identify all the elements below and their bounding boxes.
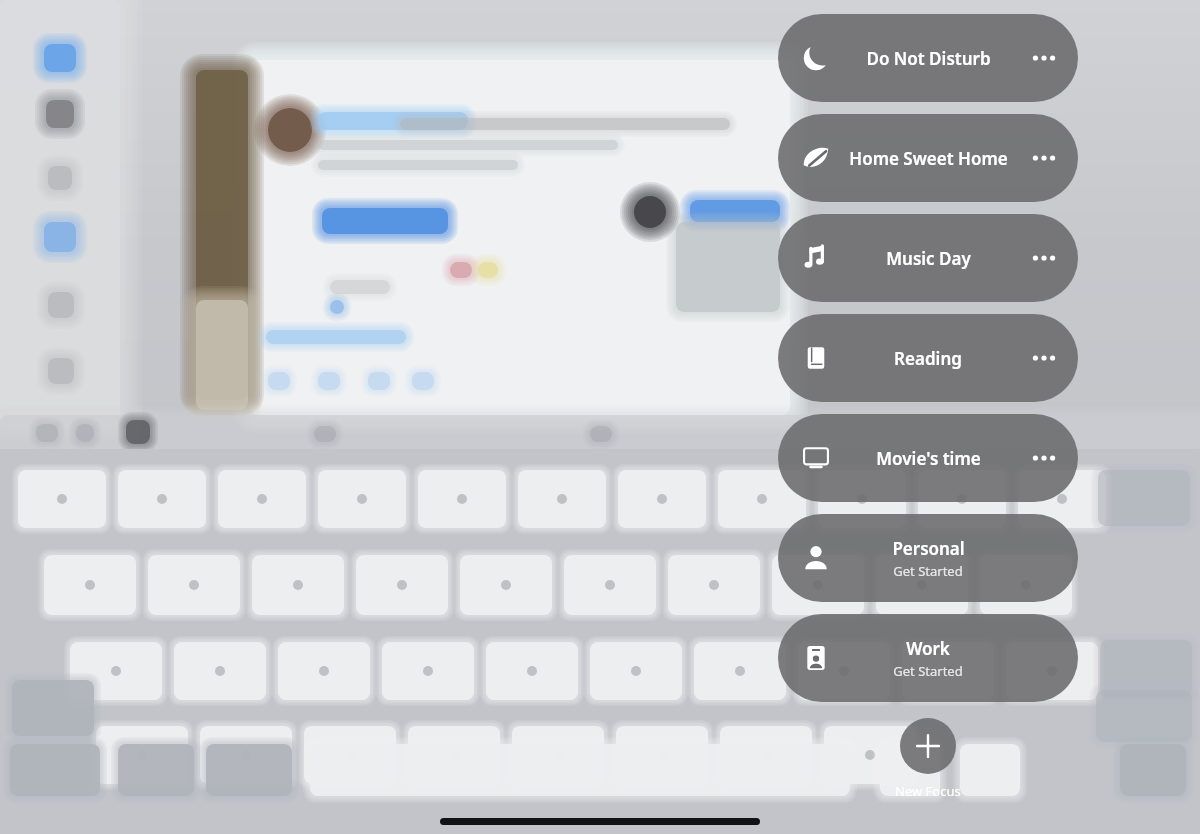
staticText: Movie's time bbox=[876, 447, 981, 470]
button[interactable]: Reading bbox=[778, 314, 1078, 402]
staticText: Personal bbox=[892, 537, 965, 560]
button[interactable]: New Focus bbox=[900, 718, 956, 774]
staticText: Work bbox=[906, 637, 950, 660]
staticText: Music Day bbox=[886, 247, 971, 270]
button[interactable]: More options for Movie's time bbox=[1024, 438, 1064, 478]
staticText: Do Not Disturb bbox=[866, 47, 991, 70]
staticText: New Focus bbox=[895, 782, 961, 800]
button[interactable]: More options for Music Day bbox=[1024, 238, 1064, 278]
staticText: Home Sweet Home bbox=[849, 147, 1008, 170]
staticText: Reading bbox=[894, 347, 962, 370]
button[interactable]: Movie's time bbox=[778, 414, 1078, 502]
button[interactable]: More options for Reading bbox=[1024, 338, 1064, 378]
button[interactable]: More options for Home Sweet Home bbox=[1024, 138, 1064, 178]
button[interactable]: Personal bbox=[778, 514, 1078, 602]
staticText: Get Started bbox=[893, 662, 963, 680]
button[interactable]: Do Not Disturb bbox=[778, 14, 1078, 102]
staticText: Get Started bbox=[893, 562, 963, 580]
button[interactable]: Music Day bbox=[778, 214, 1078, 302]
button[interactable]: More options for Do Not Disturb bbox=[1024, 38, 1064, 78]
button[interactable]: Home Sweet Home bbox=[778, 114, 1078, 202]
button[interactable]: Work bbox=[778, 614, 1078, 702]
